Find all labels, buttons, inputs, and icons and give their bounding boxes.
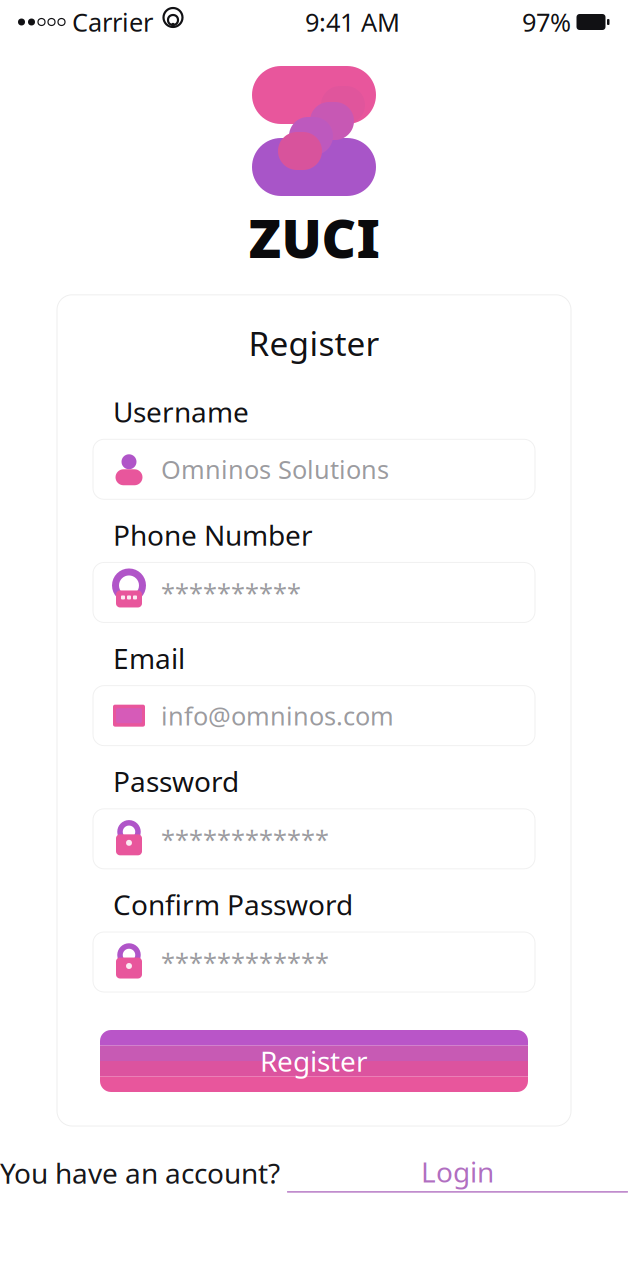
staticText: Register [260,1042,368,1080]
staticText: You have an account? [0,1154,287,1191]
staticText: Omninos Solutions [161,452,389,486]
button[interactable]: ********** [93,562,535,622]
staticText: 9:41 AM [305,5,400,39]
staticText: ZUCI [248,202,379,273]
staticText: Confirm Password [113,886,353,923]
button[interactable]: info@omninos.com [93,686,535,746]
staticText: ************ [161,822,329,856]
staticText: Email [113,639,185,677]
staticText: Login [421,1153,494,1190]
button[interactable]: Register [100,1030,528,1092]
staticText: Register [248,321,379,365]
staticText: Phone Number [113,516,313,553]
staticText: info@omninos.com [161,699,394,732]
button[interactable]: Login [287,1153,628,1193]
staticText: Username [113,393,249,430]
staticText: ********** [161,576,301,609]
staticText: ************ [161,945,329,979]
button[interactable]: Omninos Solutions [93,439,535,499]
button[interactable]: ************ [93,932,535,992]
staticText: Password [113,763,239,800]
staticText: 97% [522,5,571,39]
button[interactable]: ************ [93,809,535,869]
staticText: Carrier [72,5,153,39]
